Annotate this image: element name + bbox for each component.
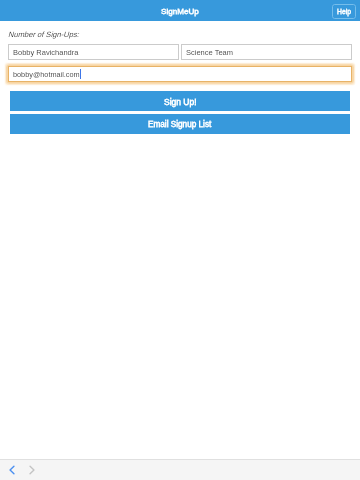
staticText: SignMeUp [161,7,199,16]
button[interactable]: bobby@hotmail.com [8,66,352,82]
staticText: bobby@hotmail.com [13,70,80,78]
button[interactable]: Help [332,4,356,19]
staticText: Email Signup List [148,120,212,129]
staticText: Number of Sign-Ups: [8,30,79,38]
staticText: Bobby Ravichandra [13,48,79,56]
button[interactable]: Bobby Ravichandra [8,44,179,60]
button[interactable]: Back [2,460,22,480]
staticText: Sign Up! [164,97,197,106]
button[interactable]: Science Team [181,44,352,60]
button[interactable]: Email Signup List [10,114,350,134]
button[interactable]: Sign Up! [10,91,350,111]
button[interactable]: Forward [22,460,42,480]
staticText: Help [337,8,351,16]
staticText: Science Team [186,48,233,56]
